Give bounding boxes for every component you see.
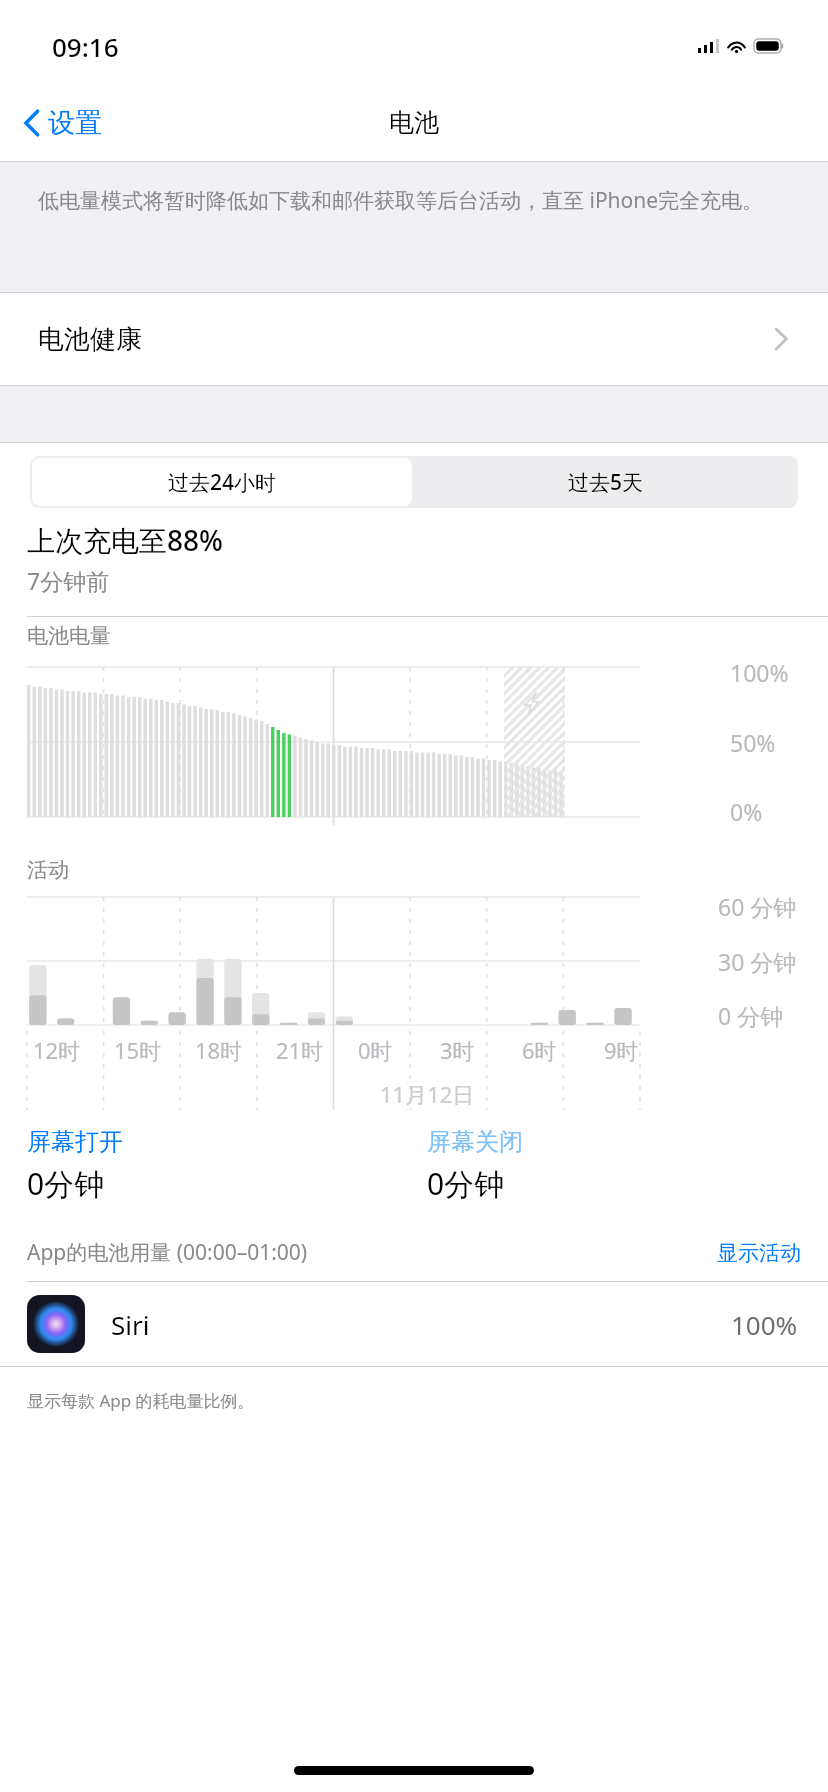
staticText: 50% <box>730 727 776 758</box>
staticText: 过去5天 <box>568 468 644 497</box>
staticText: 60 分钟 <box>718 891 797 922</box>
staticText: 30 分钟 <box>718 946 797 977</box>
button[interactable]: 设置 <box>18 100 108 146</box>
staticText: 0 分钟 <box>718 1000 784 1031</box>
staticText: 显示每款 App 的耗电量比例。 <box>27 1389 255 1412</box>
button[interactable]: 过去5天 <box>414 456 798 508</box>
staticText: 18时 <box>195 1035 243 1065</box>
staticText: 屏幕关闭 <box>427 1127 523 1157</box>
staticText: 0% <box>730 796 763 827</box>
button[interactable]: 显示活动 <box>717 1240 801 1266</box>
staticText: App的电池用量 (00:00–01:00) <box>27 1238 308 1267</box>
staticText: 100% <box>730 657 789 688</box>
staticText: 过去24小时 <box>168 468 277 497</box>
staticText: 低电量模式将暂时降低如下载和邮件获取等后台活动，直至 iPhone完全充电。 <box>38 186 764 215</box>
staticText: 9时 <box>604 1035 639 1065</box>
staticText: 电池电量 <box>27 623 111 649</box>
staticText: 0时 <box>358 1035 393 1065</box>
button[interactable]: Siri <box>0 1282 828 1366</box>
staticText: 电池 <box>389 107 439 138</box>
staticText: 电池健康 <box>38 323 142 356</box>
staticText: 11月12日 <box>380 1079 475 1109</box>
staticText: 显示活动 <box>717 1240 801 1266</box>
staticText: 上次充电至88% <box>27 521 223 559</box>
staticText: 12时 <box>33 1035 81 1065</box>
staticText: 0分钟 <box>27 1163 105 1204</box>
staticText: Siri <box>111 1307 150 1342</box>
staticText: 7分钟前 <box>27 565 110 596</box>
staticText: 活动 <box>27 857 69 883</box>
staticText: 09:16 <box>52 29 119 64</box>
button[interactable]: 过去24小时 <box>32 458 412 506</box>
staticText: 0分钟 <box>427 1163 505 1204</box>
staticText: 21时 <box>276 1035 324 1065</box>
button[interactable]: 电池健康 <box>0 293 828 385</box>
staticText: 15时 <box>114 1035 162 1065</box>
staticText: 100% <box>731 1307 798 1342</box>
staticText: 屏幕打开 <box>27 1127 123 1157</box>
staticText: 6时 <box>522 1035 557 1065</box>
staticText: 3时 <box>440 1035 475 1065</box>
staticText: 设置 <box>48 106 102 140</box>
